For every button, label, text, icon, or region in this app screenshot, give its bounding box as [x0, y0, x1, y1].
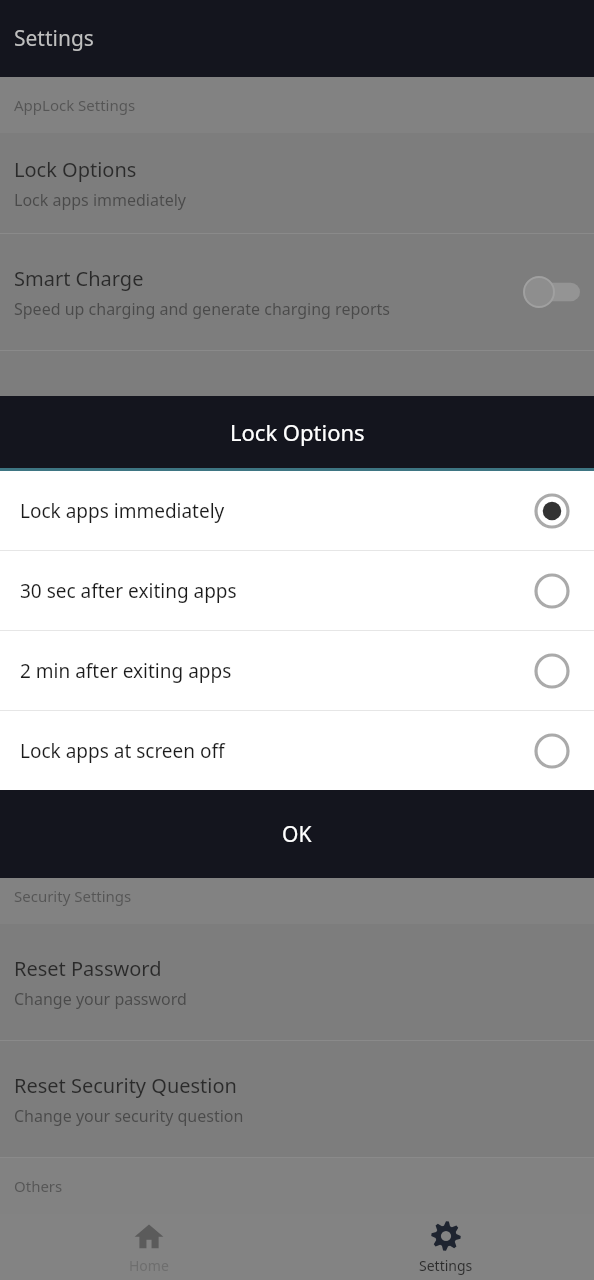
staticText: Home — [129, 1256, 169, 1275]
staticText: Reset Security Question — [14, 1072, 237, 1099]
staticText: Speed up charging and generate charging … — [14, 298, 391, 320]
staticText: Reset Password — [14, 955, 162, 982]
staticText: Lock apps at screen off — [20, 738, 534, 764]
staticText: Change your password — [14, 988, 187, 1010]
staticText: Lock apps immediately — [20, 498, 534, 524]
button[interactable]: 30 sec after exiting apps — [0, 551, 594, 630]
button[interactable]: Lock apps immediately — [0, 471, 594, 550]
staticText: AppLock Settings — [14, 95, 136, 115]
staticText: Others — [14, 1176, 63, 1196]
button[interactable]: Reset Password — [0, 924, 594, 1040]
staticText: Security Settings — [14, 886, 132, 906]
button[interactable]: Smart Charge — [0, 234, 594, 350]
staticText: Settings — [419, 1256, 473, 1275]
button[interactable]: Home — [0, 1214, 297, 1280]
staticText: Lock Options — [14, 156, 137, 183]
button[interactable]: Smart Charge toggle — [524, 277, 580, 307]
staticText: 2 min after exiting apps — [20, 658, 534, 684]
button[interactable]: Reset Security Question — [0, 1041, 594, 1157]
staticText: OK — [282, 820, 312, 849]
staticText: Change your security question — [14, 1105, 244, 1127]
button[interactable]: Lock Options — [0, 133, 594, 233]
button[interactable]: Settings — [297, 1214, 594, 1280]
button[interactable]: OK — [0, 790, 594, 878]
staticText: 30 sec after exiting apps — [20, 578, 534, 604]
button[interactable]: 2 min after exiting apps — [0, 631, 594, 710]
staticText: Smart Charge — [14, 265, 144, 292]
staticText: Lock Options — [230, 417, 365, 447]
staticText: Lock apps immediately — [14, 189, 187, 211]
staticText: Settings — [14, 24, 94, 53]
button[interactable]: Lock apps at screen off — [0, 711, 594, 790]
